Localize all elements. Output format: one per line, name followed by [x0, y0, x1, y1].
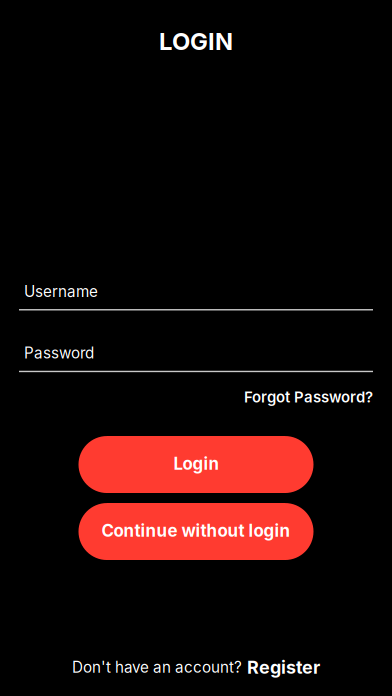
staticText: Register	[247, 656, 320, 678]
button[interactable]: Username	[0, 282, 392, 310]
staticText: Password	[24, 344, 94, 362]
staticText: LOGIN	[159, 27, 233, 56]
button[interactable]: Continue without login	[78, 503, 313, 560]
staticText: Don't have an account?	[72, 658, 242, 676]
staticText: Continue without login	[101, 520, 290, 541]
staticText: Forgot Password?	[244, 388, 373, 406]
button[interactable]: Password	[0, 344, 392, 372]
button[interactable]: Login	[78, 436, 313, 493]
button[interactable]: Register	[247, 656, 320, 678]
staticText: Username	[24, 282, 98, 301]
staticText: Login	[173, 453, 218, 474]
button[interactable]: Forgot Password?	[244, 388, 373, 406]
